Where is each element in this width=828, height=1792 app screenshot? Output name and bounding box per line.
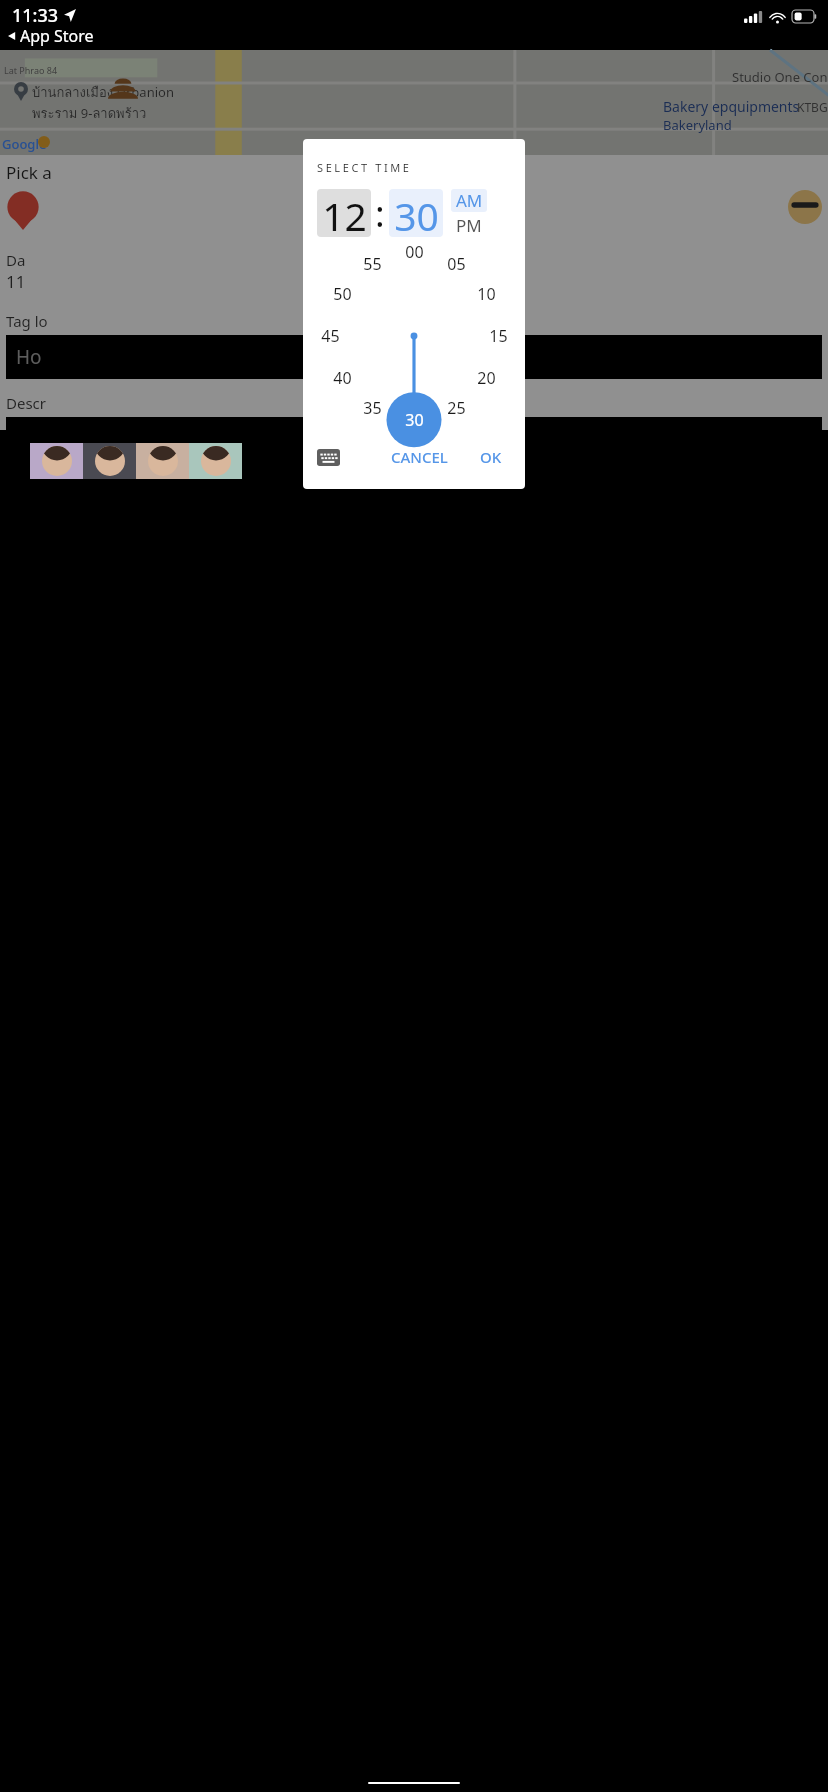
staticText: Bakery epquipments xyxy=(663,97,800,116)
button[interactable]: 00 xyxy=(321,243,507,429)
staticText: Tag lo xyxy=(6,311,48,331)
staticText: 40 xyxy=(333,367,352,389)
button[interactable]: Switch to text input xyxy=(316,445,340,469)
staticText: 20 xyxy=(477,367,496,389)
staticText: 05 xyxy=(447,253,466,275)
staticText: 10 xyxy=(477,283,496,305)
staticText: 30 xyxy=(394,189,439,237)
staticText: 11 xyxy=(6,270,26,293)
staticText: : xyxy=(375,189,385,237)
button[interactable]: AM xyxy=(451,189,487,212)
staticText: 25 xyxy=(447,397,466,419)
staticText: AM xyxy=(456,189,483,212)
staticText: SELECT TIME xyxy=(317,160,412,175)
staticText: Lat Phrao 84 xyxy=(4,64,58,76)
staticText: 45 xyxy=(321,325,340,347)
staticText: Bakeryland xyxy=(663,116,732,134)
staticText: Google xyxy=(2,135,47,153)
staticText: Da xyxy=(6,250,26,270)
staticText: CANCEL xyxy=(391,447,448,467)
staticText: 00 xyxy=(405,241,424,263)
staticText: OK xyxy=(480,447,502,467)
button[interactable]: PM xyxy=(451,214,487,237)
staticText: App Store xyxy=(20,25,94,47)
staticText: 35 xyxy=(363,397,382,419)
button[interactable]: CANCEL xyxy=(382,441,457,473)
staticText: 55 xyxy=(363,253,382,275)
staticText: 50 xyxy=(333,283,352,305)
button[interactable]: 12 xyxy=(317,189,371,237)
button[interactable]: 30 xyxy=(389,189,443,237)
staticText: PM xyxy=(456,214,482,237)
staticText: Studio One Con xyxy=(732,68,828,86)
staticText: Descr xyxy=(6,393,46,413)
staticText: Pick a xyxy=(6,161,52,184)
staticText: 15 xyxy=(489,325,508,347)
staticText: 11:33 xyxy=(12,3,59,28)
staticText: 30 xyxy=(405,409,424,431)
staticText: บ้านกลางเมือง Urbanion xyxy=(32,82,174,103)
staticText: พระราม 9-ลาดพร้าว xyxy=(32,103,147,124)
staticText: Ho xyxy=(16,344,42,370)
staticText: 12 xyxy=(322,189,367,237)
staticText: KTBG xyxy=(797,99,828,115)
button[interactable]: OK xyxy=(471,441,511,473)
